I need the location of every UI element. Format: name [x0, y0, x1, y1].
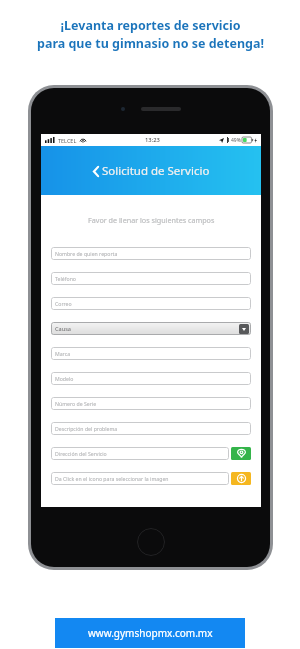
button[interactable]: Seleccionar ubicación — [231, 447, 251, 460]
button[interactable]: Solicitud de Servicio — [93, 163, 210, 179]
button[interactable]: Nombre de quien reporta — [51, 247, 251, 260]
button[interactable]: Causa — [51, 322, 251, 335]
staticText: Marca — [55, 350, 71, 357]
staticText: 13:23 — [145, 136, 160, 144]
staticText: Nombre de quien reporta — [55, 250, 118, 257]
button[interactable]: Modelo — [51, 372, 251, 385]
staticText: ¡Levanta reportes de servicio — [60, 17, 241, 34]
staticText: Solicitud de Servicio — [102, 163, 210, 179]
staticText: Dirección del Servicio — [55, 450, 107, 457]
button[interactable]: Marca — [51, 347, 251, 360]
button[interactable]: Home — [137, 528, 165, 556]
button[interactable]: Teléfono — [51, 272, 251, 285]
staticText: 49% — [231, 137, 241, 144]
staticText: Favor de llenar los siguientes campos — [88, 215, 215, 225]
button[interactable]: Correo — [51, 297, 251, 310]
button[interactable]: Da Click en el icono para seleccionar la… — [51, 472, 229, 485]
staticText: www.gymshopmx.com.mx — [88, 626, 213, 640]
staticText: Causa — [55, 325, 71, 333]
button[interactable]: Número de Serie — [51, 397, 251, 410]
staticText: Número de Serie — [55, 400, 97, 407]
button[interactable]: Descripción del problema — [51, 422, 251, 435]
staticText: Da Click en el icono para seleccionar la… — [55, 475, 169, 482]
staticText: Correo — [55, 300, 72, 307]
staticText: TELCEL — [58, 137, 77, 144]
button[interactable]: Seleccionar imagen — [231, 472, 251, 485]
staticText: Descripción del problema — [55, 425, 118, 432]
staticText: para que tu gimnasio no se detenga! — [37, 35, 264, 52]
staticText: Teléfono — [55, 275, 76, 282]
button[interactable]: www.gymshopmx.com.mx — [55, 618, 245, 648]
staticText: Modelo — [55, 375, 74, 382]
button[interactable]: Dirección del Servicio — [51, 447, 229, 460]
